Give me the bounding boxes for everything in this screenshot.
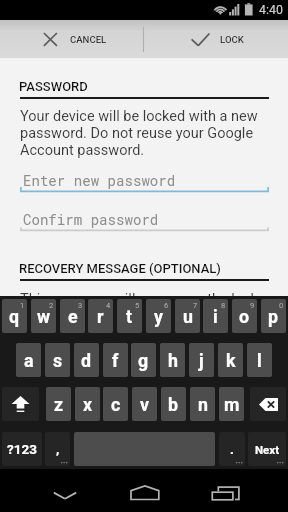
- staticText: Next: [255, 443, 280, 456]
- button[interactable]: Recents: [201, 469, 249, 512]
- button[interactable]: .: [219, 432, 245, 466]
- staticText: .: [230, 441, 234, 457]
- button[interactable]: f: [103, 343, 128, 377]
- button[interactable]: n: [190, 387, 215, 421]
- button[interactable]: q: [2, 299, 27, 333]
- staticText: 8: [221, 301, 226, 310]
- staticText: w: [37, 306, 51, 327]
- button[interactable]: v: [132, 387, 157, 421]
- staticText: 2: [49, 301, 54, 310]
- staticText: ?123: [7, 441, 37, 457]
- staticText: This message will appear on the lock scr…: [20, 291, 270, 325]
- staticText: m: [224, 394, 240, 415]
- staticText: 7: [193, 301, 198, 310]
- button[interactable]: Next: [248, 432, 286, 466]
- staticText: 9: [250, 301, 255, 310]
- staticText: p: [268, 306, 279, 327]
- staticText: e: [68, 306, 78, 327]
- staticText: d: [81, 350, 92, 371]
- button[interactable]: s: [45, 343, 70, 377]
- staticText: Your device will be locked with a new pa…: [20, 108, 270, 159]
- button[interactable]: a: [16, 343, 41, 377]
- button[interactable]: b: [161, 387, 186, 421]
- button[interactable]: z: [46, 387, 71, 421]
- button[interactable]: c: [103, 387, 128, 421]
- staticText: o: [239, 306, 250, 327]
- staticText: q: [9, 306, 20, 327]
- button[interactable]: w: [31, 299, 56, 333]
- button[interactable]: u: [175, 299, 200, 333]
- staticText: 6: [164, 301, 169, 310]
- staticText: i: [213, 306, 218, 327]
- button[interactable]: j: [189, 343, 214, 377]
- staticText: u: [183, 306, 193, 327]
- button[interactable]: g: [131, 343, 156, 377]
- button[interactable]: e: [60, 299, 85, 333]
- button[interactable]: r: [88, 299, 113, 333]
- staticText: 5: [135, 301, 140, 310]
- staticText: n: [198, 394, 208, 415]
- staticText: r: [97, 306, 104, 327]
- staticText: Enter new password: [23, 171, 176, 190]
- button[interactable]: x: [75, 387, 100, 421]
- staticText: y: [154, 306, 163, 327]
- button[interactable]: ?123: [2, 432, 42, 466]
- button[interactable]: Home: [121, 469, 169, 512]
- staticText: x: [83, 394, 93, 415]
- staticText: 0: [279, 301, 284, 310]
- staticText: k: [226, 350, 236, 371]
- staticText: CANCEL: [70, 34, 107, 45]
- button[interactable]: i: [203, 299, 228, 333]
- staticText: c: [111, 394, 121, 415]
- button[interactable]: p: [261, 299, 286, 333]
- staticText: v: [140, 394, 150, 415]
- staticText: Confirm password: [23, 210, 159, 229]
- button[interactable]: o: [232, 299, 257, 333]
- staticText: PASSWORD: [19, 79, 88, 94]
- button[interactable]: y: [146, 299, 171, 333]
- button[interactable]: t: [117, 299, 142, 333]
- button[interactable]: Delete: [250, 387, 286, 421]
- button[interactable]: m: [219, 387, 244, 421]
- button[interactable]: l: [247, 343, 272, 377]
- button[interactable]: k: [218, 343, 243, 377]
- staticText: g: [138, 350, 149, 371]
- button[interactable]: d: [74, 343, 99, 377]
- button[interactable]: Enter new password: [20, 164, 269, 196]
- staticText: 4:40: [259, 2, 283, 17]
- staticText: 4: [106, 301, 111, 310]
- staticText: f: [112, 350, 119, 371]
- button[interactable]: [0, 20, 143, 58]
- staticText: b: [168, 394, 179, 415]
- staticText: h: [168, 350, 178, 371]
- button[interactable]: Confirm password: [20, 203, 269, 235]
- staticText: RECOVERY MESSAGE (OPTIONAL): [19, 261, 221, 276]
- button[interactable]: [144, 20, 288, 58]
- staticText: a: [24, 350, 34, 371]
- staticText: j: [199, 350, 204, 371]
- button[interactable]: Hide keyboard: [41, 469, 89, 512]
- button[interactable]: ,: [45, 432, 70, 466]
- staticText: 3: [78, 301, 83, 310]
- staticText: z: [54, 394, 64, 415]
- staticText: 1: [20, 301, 25, 310]
- staticText: ,: [56, 441, 60, 457]
- button[interactable]: Shift: [2, 387, 39, 421]
- staticText: t: [126, 306, 133, 327]
- staticText: l: [257, 350, 262, 371]
- button[interactable]: h: [160, 343, 185, 377]
- staticText: LOCK: [220, 34, 244, 45]
- staticText: s: [53, 350, 63, 371]
